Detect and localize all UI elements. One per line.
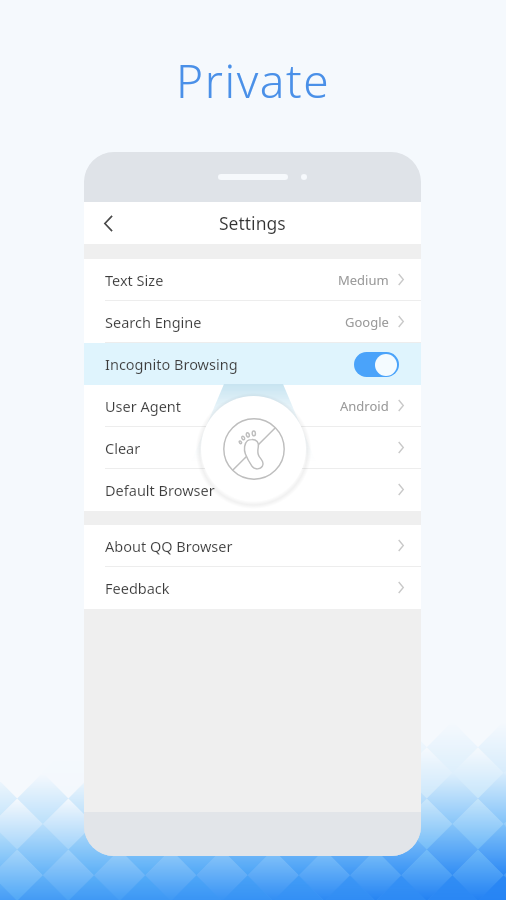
staticText: Search Engine xyxy=(105,312,202,332)
staticText: Medium xyxy=(338,271,389,289)
button[interactable]: Incognito Browsing xyxy=(84,343,421,385)
button[interactable]: Clear xyxy=(84,427,421,469)
staticText: Default Browser xyxy=(105,480,215,500)
staticText: Clear xyxy=(105,438,141,458)
button[interactable]: Search Engine xyxy=(84,301,421,343)
staticText: About QQ Browser xyxy=(105,536,233,556)
button[interactable]: Default Browser xyxy=(84,469,421,511)
staticText: Settings xyxy=(219,211,286,235)
staticText: Feedback xyxy=(105,578,170,598)
staticText: Private xyxy=(176,49,331,112)
staticText: Google xyxy=(345,313,389,331)
button[interactable]: Text Size xyxy=(84,259,421,301)
button[interactable]: User Agent xyxy=(84,385,421,427)
button[interactable]: About QQ Browser xyxy=(84,525,421,567)
staticText: User Agent xyxy=(105,396,182,416)
button[interactable]: Back xyxy=(84,202,126,244)
button[interactable]: Feedback xyxy=(84,567,421,609)
staticText: Text Size xyxy=(105,270,164,290)
staticText: Incognito Browsing xyxy=(105,354,238,374)
staticText: Android xyxy=(340,397,389,415)
